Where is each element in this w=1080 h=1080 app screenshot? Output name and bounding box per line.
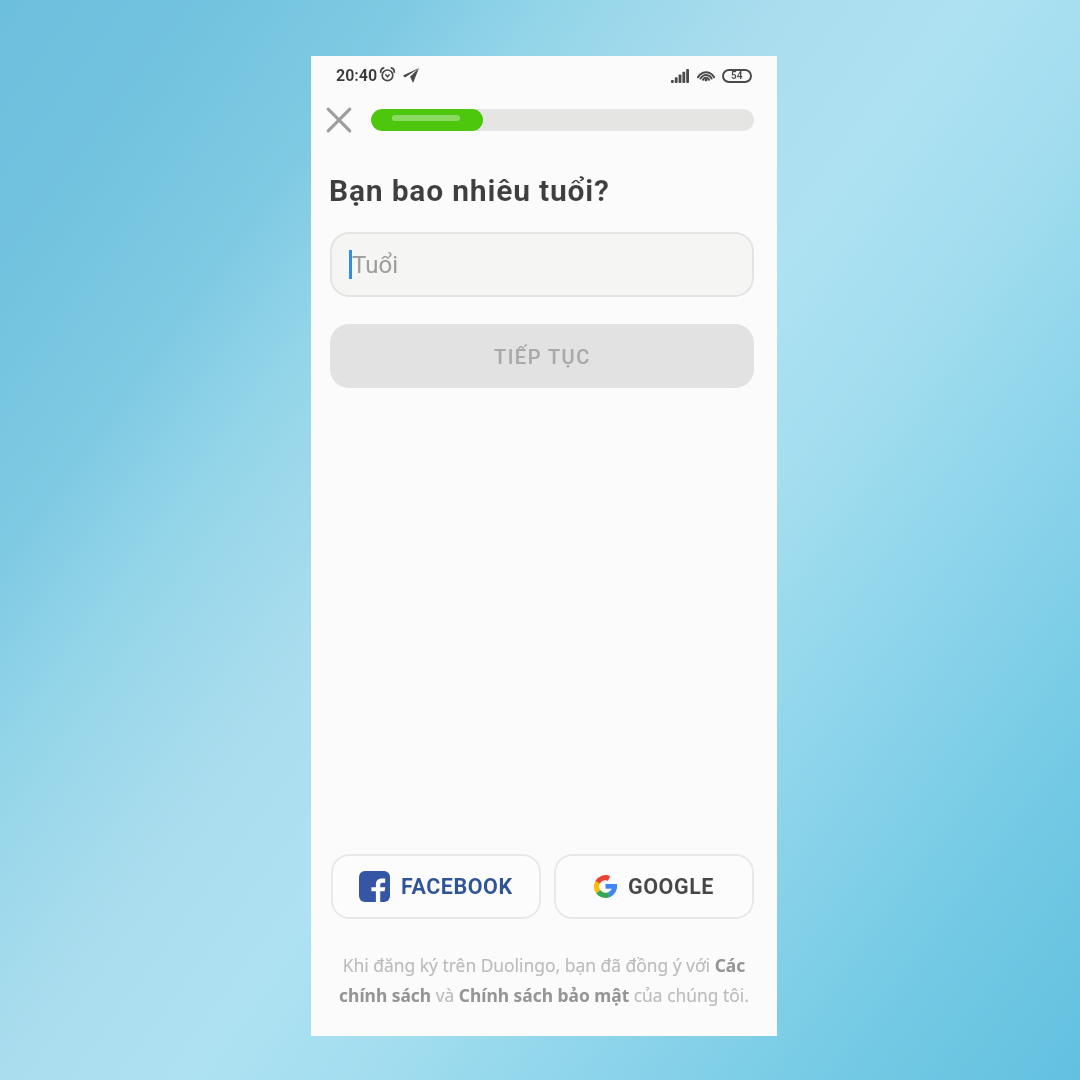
button[interactable]: Close: [319, 100, 359, 140]
staticText: FACEBOOK: [401, 874, 513, 899]
staticText: Bạn bao nhiêu tuổi?: [329, 173, 610, 208]
staticText: Tuổi: [352, 251, 398, 279]
button[interactable]: TIẾP TỤC: [330, 324, 754, 388]
staticText: Khi đăng ký trên Duolingo, bạn đã đồng ý…: [334, 953, 754, 1007]
button[interactable]: Khi đăng ký trên Duolingo, bạn đã đồng ý…: [334, 953, 754, 1007]
staticText: 20:40: [336, 66, 378, 85]
button[interactable]: GOOGLE: [554, 854, 754, 919]
staticText: 54: [731, 70, 743, 82]
staticText: GOOGLE: [628, 874, 714, 899]
button[interactable]: Tuổi: [330, 232, 754, 297]
staticText: TIẾP TỤC: [494, 345, 591, 368]
button[interactable]: FACEBOOK: [331, 854, 541, 919]
